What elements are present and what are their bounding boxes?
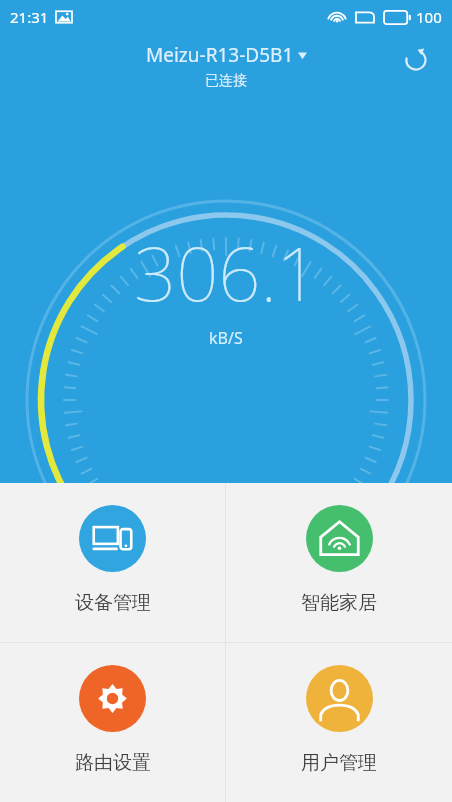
- staticText: 已连接: [205, 72, 247, 90]
- button[interactable]: 路由设置: [0, 643, 225, 802]
- staticText: 智能家居: [301, 591, 377, 615]
- button[interactable]: 智能家居: [226, 483, 452, 642]
- staticText: 设备管理: [75, 591, 151, 615]
- staticText: 21:31: [10, 7, 49, 27]
- staticText: 路由设置: [75, 751, 151, 775]
- button[interactable]: Refresh: [396, 40, 436, 80]
- button[interactable]: 用户管理: [226, 643, 452, 802]
- staticText: Meizu-R13-D5B1: [146, 42, 294, 68]
- staticText: 306.1: [134, 222, 319, 323]
- staticText: kB/S: [209, 327, 243, 349]
- staticText: 用户管理: [301, 751, 377, 775]
- staticText: 100: [416, 7, 442, 27]
- button[interactable]: 设备管理: [0, 483, 225, 642]
